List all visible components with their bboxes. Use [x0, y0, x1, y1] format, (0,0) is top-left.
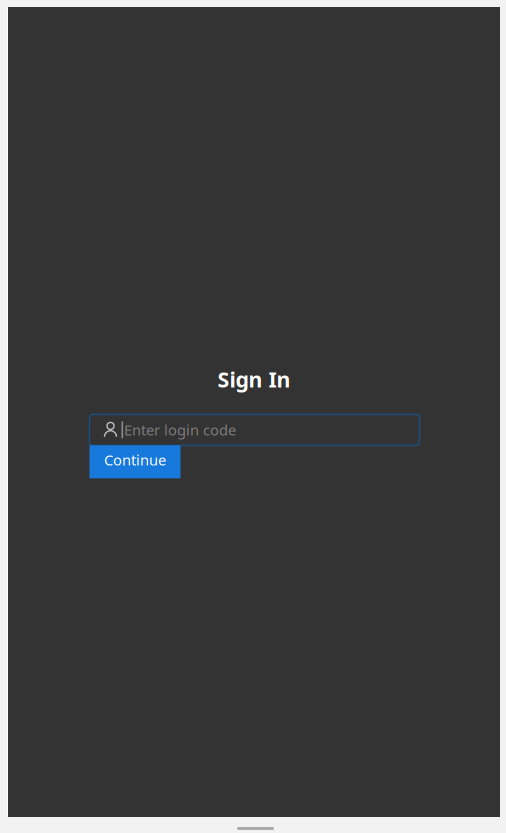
- staticText: Enter login code: [124, 420, 236, 440]
- button[interactable]: Continue: [89, 445, 180, 478]
- staticText: Continue: [104, 450, 166, 470]
- button[interactable]: Enter login code: [89, 414, 419, 445]
- staticText: Sign In: [217, 365, 290, 393]
